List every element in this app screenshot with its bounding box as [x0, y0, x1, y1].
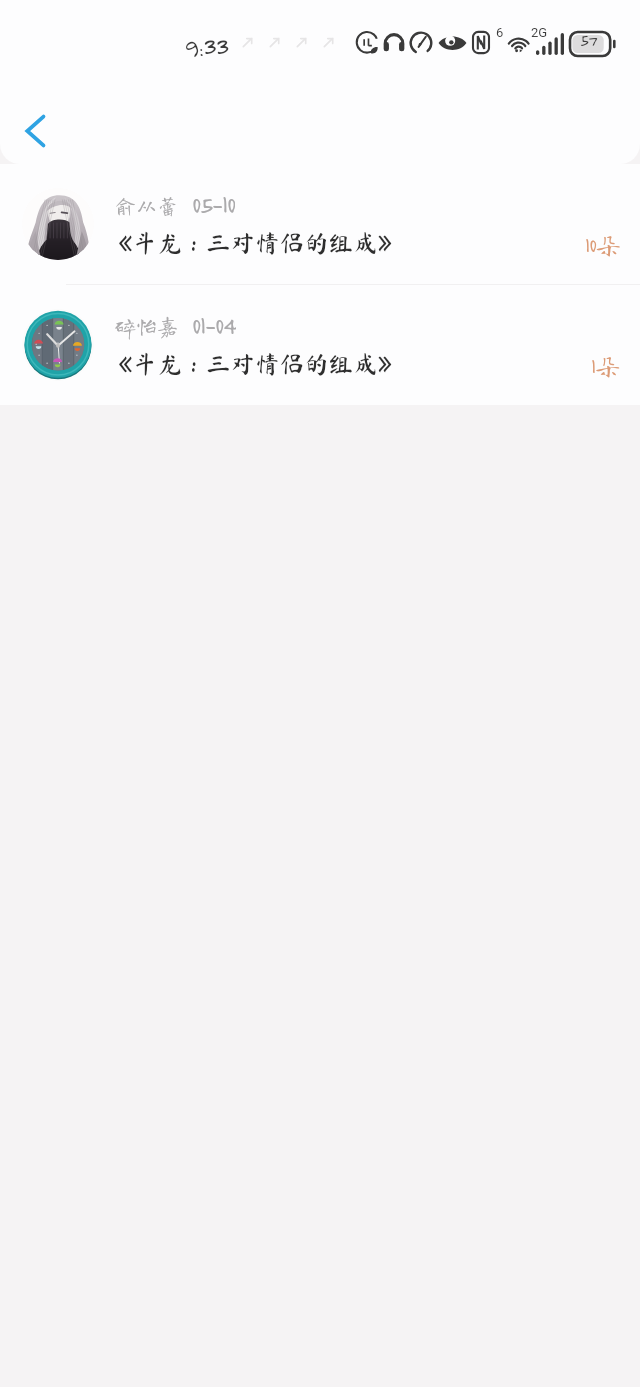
staticText: 01-04 — [192, 310, 236, 336]
staticText: 9:33 — [184, 31, 229, 62]
button[interactable]: Back — [10, 104, 64, 158]
button[interactable]: 俞从蕾 — [0, 164, 640, 284]
staticText: 6 — [496, 25, 504, 40]
button[interactable]: 碎怡嘉 — [0, 285, 640, 405]
staticText: 10朵 — [585, 232, 621, 257]
staticText: 《斗龙：三对情侣的组成》 — [108, 351, 402, 375]
staticText: 57 — [580, 30, 597, 50]
staticText: 碎怡嘉 — [115, 316, 178, 337]
staticText: 2G — [531, 25, 548, 40]
staticText: 05-10 — [192, 189, 235, 215]
staticText: 俞从蕾 — [115, 195, 178, 216]
staticText: 《斗龙：三对情侣的组成》 — [108, 230, 402, 254]
staticText: 1朵 — [591, 353, 621, 378]
